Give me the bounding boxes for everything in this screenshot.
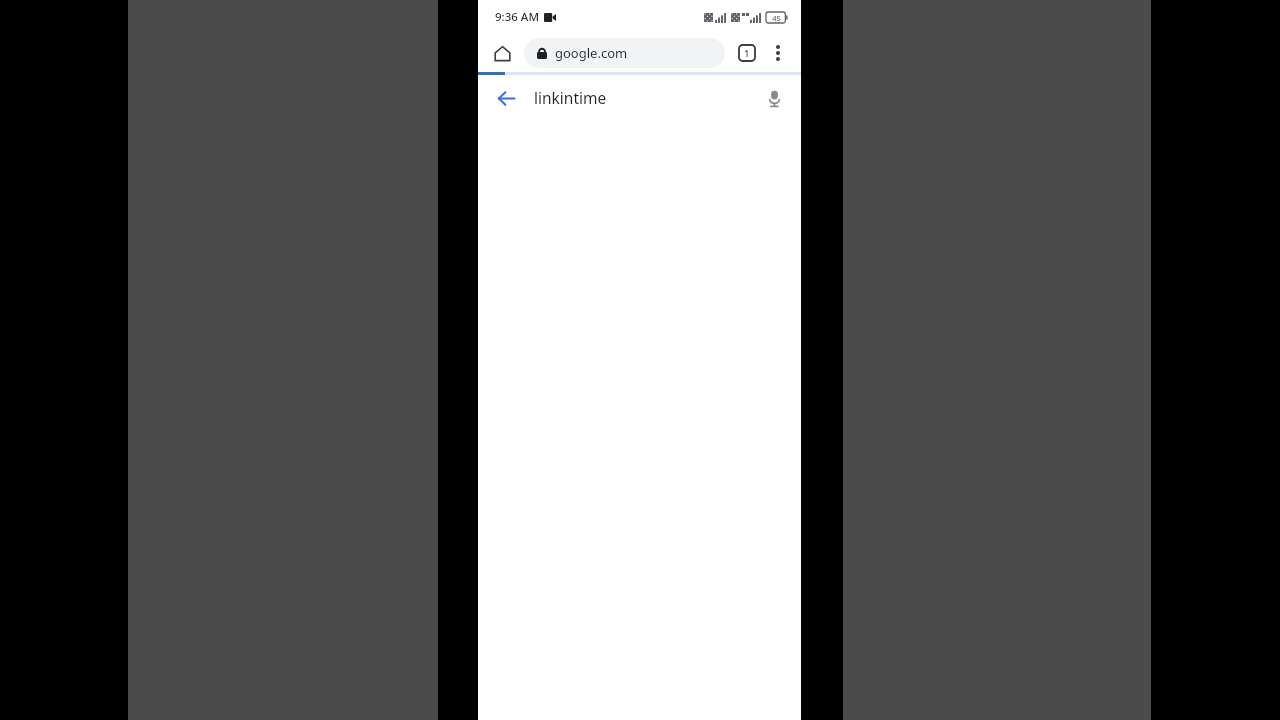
staticText: 1 [744, 47, 750, 60]
button[interactable]: google.com [524, 38, 725, 68]
staticText: 45 [772, 13, 781, 23]
button[interactable]: More options [763, 38, 793, 68]
staticText: 9:36 AM [495, 9, 539, 25]
button[interactable]: Voice search [757, 81, 791, 115]
button[interactable]: Home [486, 37, 518, 69]
staticText: google.com [555, 44, 628, 62]
staticText: linkintime [534, 87, 757, 108]
button[interactable]: Tabs [731, 37, 763, 69]
button[interactable]: Back [489, 81, 523, 115]
